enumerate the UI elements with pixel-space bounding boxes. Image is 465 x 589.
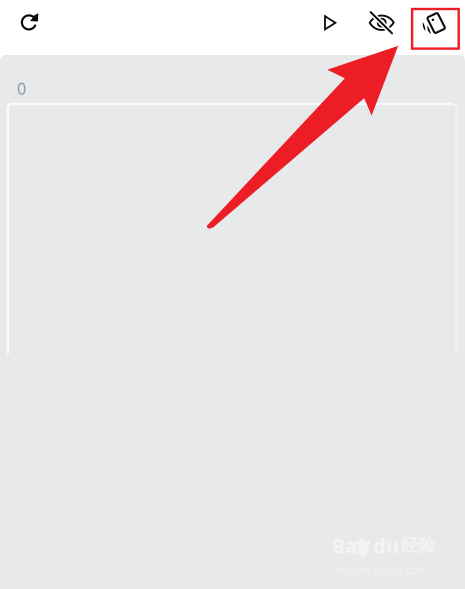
button[interactable]: Run xyxy=(306,0,354,46)
staticText: Bai xyxy=(332,532,363,559)
staticText: 经验 xyxy=(401,535,435,556)
button[interactable]: Refresh xyxy=(6,0,54,46)
staticText: 0 xyxy=(17,78,26,99)
button[interactable]: Toggle preview xyxy=(354,0,409,46)
staticText: du xyxy=(373,532,399,559)
button[interactable]: Shake gesture xyxy=(409,0,459,46)
